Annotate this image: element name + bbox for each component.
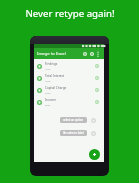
button[interactable]: Findings — [34, 60, 104, 72]
button[interactable]: More options — [95, 48, 100, 59]
button[interactable]: Settings — [89, 51, 94, 56]
button[interactable]: select an option — [60, 117, 87, 123]
staticText: 3456 — [45, 91, 51, 94]
staticText: Total Interest — [45, 74, 65, 78]
button[interactable]: Capital Charge — [34, 84, 104, 96]
staticText: select an option — [63, 118, 84, 122]
staticText: 4567 — [45, 103, 51, 106]
staticText: 2345 — [45, 79, 51, 82]
staticText: Findings — [45, 62, 58, 66]
staticText: 1234 — [45, 67, 51, 70]
button[interactable]: Camera — [82, 51, 87, 56]
button[interactable]: Income — [34, 96, 104, 108]
staticText: Never retype again! — [25, 7, 115, 20]
staticText: Image to Excel — [37, 51, 66, 57]
staticText: file select a label — [63, 131, 84, 135]
button[interactable]: Add — [89, 149, 100, 160]
button[interactable]: file select a label — [60, 130, 87, 136]
staticText: Capital Charge — [45, 86, 67, 90]
button[interactable]: Total Interest — [34, 72, 104, 84]
staticText: Income — [45, 98, 56, 102]
